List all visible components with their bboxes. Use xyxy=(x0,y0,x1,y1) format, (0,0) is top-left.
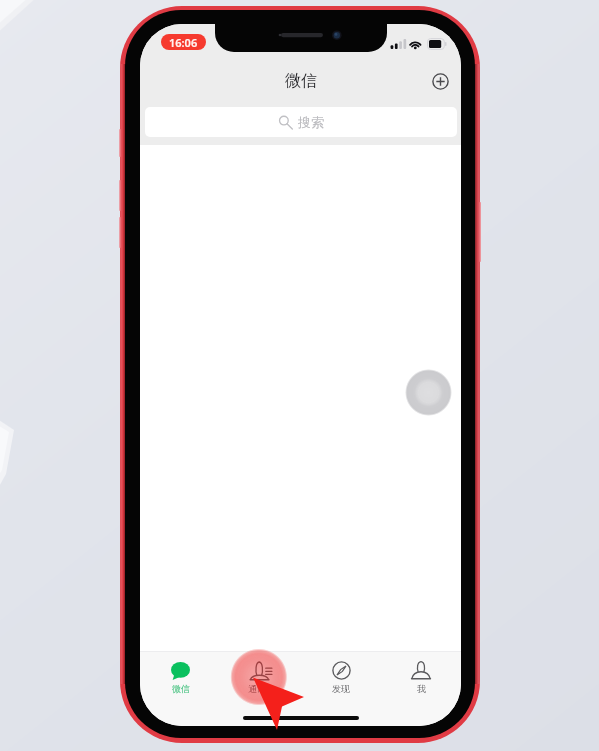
staticText: 我 xyxy=(417,683,426,694)
staticText: 搜索 xyxy=(298,114,324,130)
button[interactable]: AssistiveTouch xyxy=(403,367,454,418)
button[interactable]: 搜索 xyxy=(145,107,457,137)
staticText: 通讯录 xyxy=(248,683,275,694)
staticText: 微信 xyxy=(285,71,317,91)
staticText: 发现 xyxy=(332,683,350,694)
staticText: 微信 xyxy=(172,683,190,694)
button[interactable]: 发现 xyxy=(301,651,381,699)
button[interactable]: Add xyxy=(428,69,452,93)
button[interactable]: 我 xyxy=(381,651,461,699)
button[interactable]: 微信 xyxy=(140,651,221,699)
staticText: 16:06 xyxy=(169,35,198,50)
button[interactable]: 通讯录 xyxy=(221,651,301,699)
